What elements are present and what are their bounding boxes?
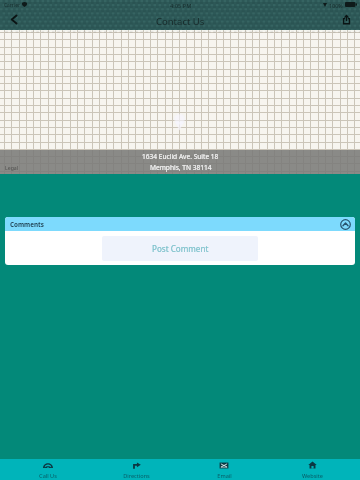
button[interactable]: Directions	[92, 459, 180, 480]
staticText: Email	[217, 472, 232, 480]
staticText: Directions	[123, 472, 150, 480]
button[interactable]: Post Comment	[102, 236, 258, 261]
button[interactable]: Share	[334, 8, 358, 30]
button[interactable]: Back	[2, 8, 26, 30]
staticText: 1634 Euclid Ave. Suite 18	[142, 152, 219, 161]
staticText: Website	[302, 472, 323, 480]
staticText: 100%	[329, 2, 343, 9]
staticText: Call Us	[39, 472, 57, 480]
staticText: Memphis, TN 38114	[150, 163, 212, 172]
button[interactable]: Email	[180, 459, 268, 480]
staticText: Post Comment	[152, 243, 209, 254]
staticText: 4:05 PM	[170, 2, 192, 10]
staticText: Comments	[10, 220, 45, 229]
staticText: Contact Us	[156, 15, 205, 28]
staticText: Carrier	[4, 2, 20, 9]
staticText: Legal	[5, 164, 19, 171]
button[interactable]: Collapse comments	[339, 218, 351, 230]
button[interactable]: Website	[268, 459, 356, 480]
button[interactable]: Call Us	[4, 459, 92, 480]
